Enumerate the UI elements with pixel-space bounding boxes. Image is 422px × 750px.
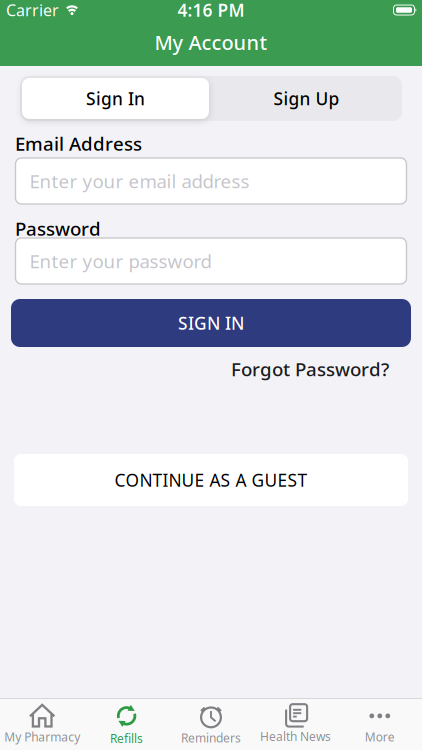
staticText: Sign In: [86, 87, 145, 110]
button[interactable]: My Pharmacy: [0, 700, 84, 748]
staticText: Enter your password: [29, 249, 211, 273]
staticText: SIGN IN: [178, 311, 244, 334]
staticText: Enter your email address: [29, 169, 249, 193]
staticText: Forgot Password?: [231, 357, 389, 381]
button[interactable]: Refills: [84, 700, 169, 748]
staticText: My Pharmacy: [4, 729, 80, 745]
button[interactable]: More: [338, 700, 422, 748]
staticText: Sign Up: [273, 87, 339, 110]
staticText: Email Address: [15, 131, 142, 156]
staticText: Health News: [260, 728, 331, 744]
button[interactable]: SIGN IN: [11, 299, 411, 347]
button[interactable]: Health News: [253, 700, 338, 748]
button[interactable]: CONTINUE AS A GUEST: [14, 454, 408, 506]
button[interactable]: Sign In: [22, 78, 209, 119]
staticText: CONTINUE AS A GUEST: [114, 468, 307, 491]
staticText: Carrier: [6, 0, 59, 21]
button[interactable]: Sign Up: [213, 78, 400, 119]
button[interactable]: Forgot Password?: [231, 357, 389, 381]
secureTextField[interactable]: Enter your password: [15, 238, 406, 284]
button[interactable]: Reminders: [169, 700, 253, 748]
staticText: Refills: [110, 730, 143, 746]
staticText: Reminders: [181, 730, 241, 746]
staticText: Password: [15, 216, 101, 241]
textField[interactable]: Enter your email address: [15, 158, 406, 204]
staticText: My Account: [154, 29, 267, 56]
staticText: More: [365, 729, 395, 745]
staticText: 4:16 PM: [177, 0, 244, 21]
